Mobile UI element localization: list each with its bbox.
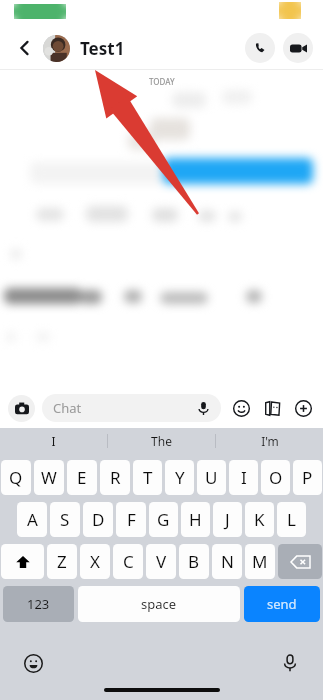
staticText: I: [241, 466, 247, 489]
button[interactable]: Voice input: [279, 652, 301, 674]
button[interactable]: Camera: [8, 395, 35, 422]
button[interactable]: V: [146, 544, 176, 579]
button[interactable]: G: [149, 502, 178, 537]
button[interactable]: 123: [3, 586, 74, 622]
staticText: H: [189, 508, 202, 531]
staticText: N: [221, 550, 234, 573]
button[interactable]: F: [116, 502, 146, 537]
button[interactable]: U: [197, 460, 226, 495]
staticText: M: [252, 550, 268, 573]
staticText: send: [267, 595, 297, 613]
button[interactable]: Q: [1, 460, 31, 495]
staticText: U: [205, 466, 218, 489]
staticText: Y: [175, 466, 185, 489]
button[interactable]: Chat: [42, 394, 221, 422]
button[interactable]: T: [133, 460, 162, 495]
button[interactable]: L: [277, 502, 306, 537]
button[interactable]: Y: [165, 460, 194, 495]
button[interactable]: Video call: [283, 33, 313, 63]
button[interactable]: C: [113, 544, 143, 579]
button[interactable]: P: [293, 460, 322, 495]
staticText: T: [143, 466, 153, 489]
staticText: space: [141, 595, 177, 613]
staticText: V: [156, 550, 167, 573]
staticText: S: [60, 508, 70, 531]
button[interactable]: M: [245, 544, 275, 579]
button[interactable]: Emoji: [22, 652, 44, 674]
button[interactable]: I: [229, 460, 258, 495]
staticText: Chat: [53, 399, 82, 417]
staticText: TODAY: [149, 76, 175, 87]
button[interactable]: [43, 35, 70, 62]
button[interactable]: Call: [245, 33, 275, 63]
staticText: Z: [57, 550, 67, 573]
staticText: A: [27, 508, 38, 531]
staticText: The: [151, 433, 172, 449]
button[interactable]: space: [78, 586, 240, 622]
staticText: X: [90, 550, 100, 573]
staticText: C: [123, 550, 134, 573]
staticText: L: [287, 508, 296, 531]
staticText: B: [188, 550, 200, 573]
staticText: K: [254, 508, 265, 531]
button[interactable]: Z: [47, 544, 77, 579]
staticText: E: [77, 466, 87, 489]
button[interactable]: Shift: [1, 544, 44, 579]
button[interactable]: H: [181, 502, 210, 537]
button[interactable]: S: [50, 502, 80, 537]
button[interactable]: J: [213, 502, 242, 537]
staticText: Q: [9, 466, 23, 489]
staticText: I: [51, 433, 56, 449]
staticText: G: [157, 508, 170, 531]
button[interactable]: E: [67, 460, 97, 495]
staticText: R: [110, 466, 121, 489]
button[interactable]: GIF: [260, 396, 284, 420]
button[interactable]: D: [83, 502, 113, 537]
button[interactable]: Stickers: [229, 396, 253, 420]
button[interactable]: send: [244, 586, 320, 622]
button[interactable]: X: [80, 544, 110, 579]
button[interactable]: A: [17, 502, 47, 537]
staticText: F: [127, 508, 136, 531]
staticText: I'm: [261, 433, 279, 449]
button[interactable]: R: [100, 460, 130, 495]
button[interactable]: B: [179, 544, 209, 579]
button[interactable]: I: [0, 428, 107, 454]
staticText: D: [92, 508, 105, 531]
staticText: J: [225, 508, 230, 531]
button[interactable]: Test1: [80, 37, 125, 60]
button[interactable]: N: [212, 544, 242, 579]
staticText: W: [41, 466, 57, 489]
button[interactable]: Backspace: [278, 544, 322, 579]
button[interactable]: K: [245, 502, 274, 537]
button[interactable]: The: [108, 428, 215, 454]
staticText: O: [269, 466, 283, 489]
button[interactable]: W: [34, 460, 64, 495]
button[interactable]: O: [261, 460, 290, 495]
button[interactable]: Back: [10, 33, 40, 63]
button[interactable]: More: [291, 396, 315, 420]
staticText: 123: [27, 595, 50, 613]
staticText: P: [302, 466, 313, 489]
button[interactable]: I'm: [216, 428, 323, 454]
